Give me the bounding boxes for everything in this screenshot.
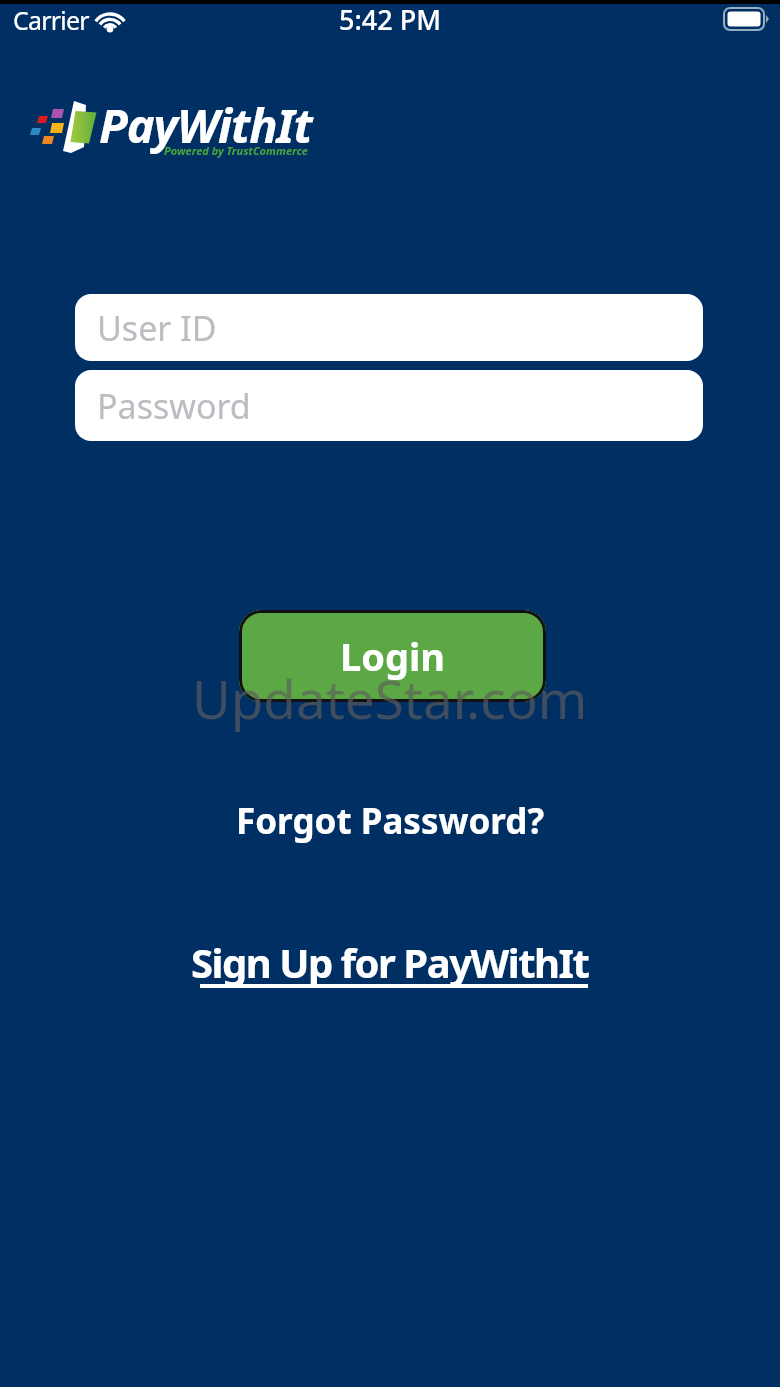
staticText: UpdateStar.com	[192, 662, 588, 734]
button[interactable]: Sign Up for PayWithIt	[191, 935, 589, 989]
staticText: PayWithIt	[99, 93, 312, 157]
button[interactable]: Login	[239, 610, 546, 702]
staticText: Login	[340, 630, 446, 682]
staticText: 5:42 PM	[339, 1, 441, 38]
staticText: Password	[97, 383, 251, 429]
staticText: Powered by TrustCommerce	[164, 143, 308, 158]
button[interactable]: Forgot Password?	[236, 797, 545, 845]
staticText: Carrier	[13, 3, 89, 37]
button[interactable]: User ID	[75, 294, 703, 361]
staticText: User ID	[97, 305, 217, 351]
staticText: Forgot Password?	[236, 797, 545, 845]
button[interactable]: Password	[75, 370, 703, 441]
staticText: Sign Up for PayWithIt	[191, 935, 589, 989]
